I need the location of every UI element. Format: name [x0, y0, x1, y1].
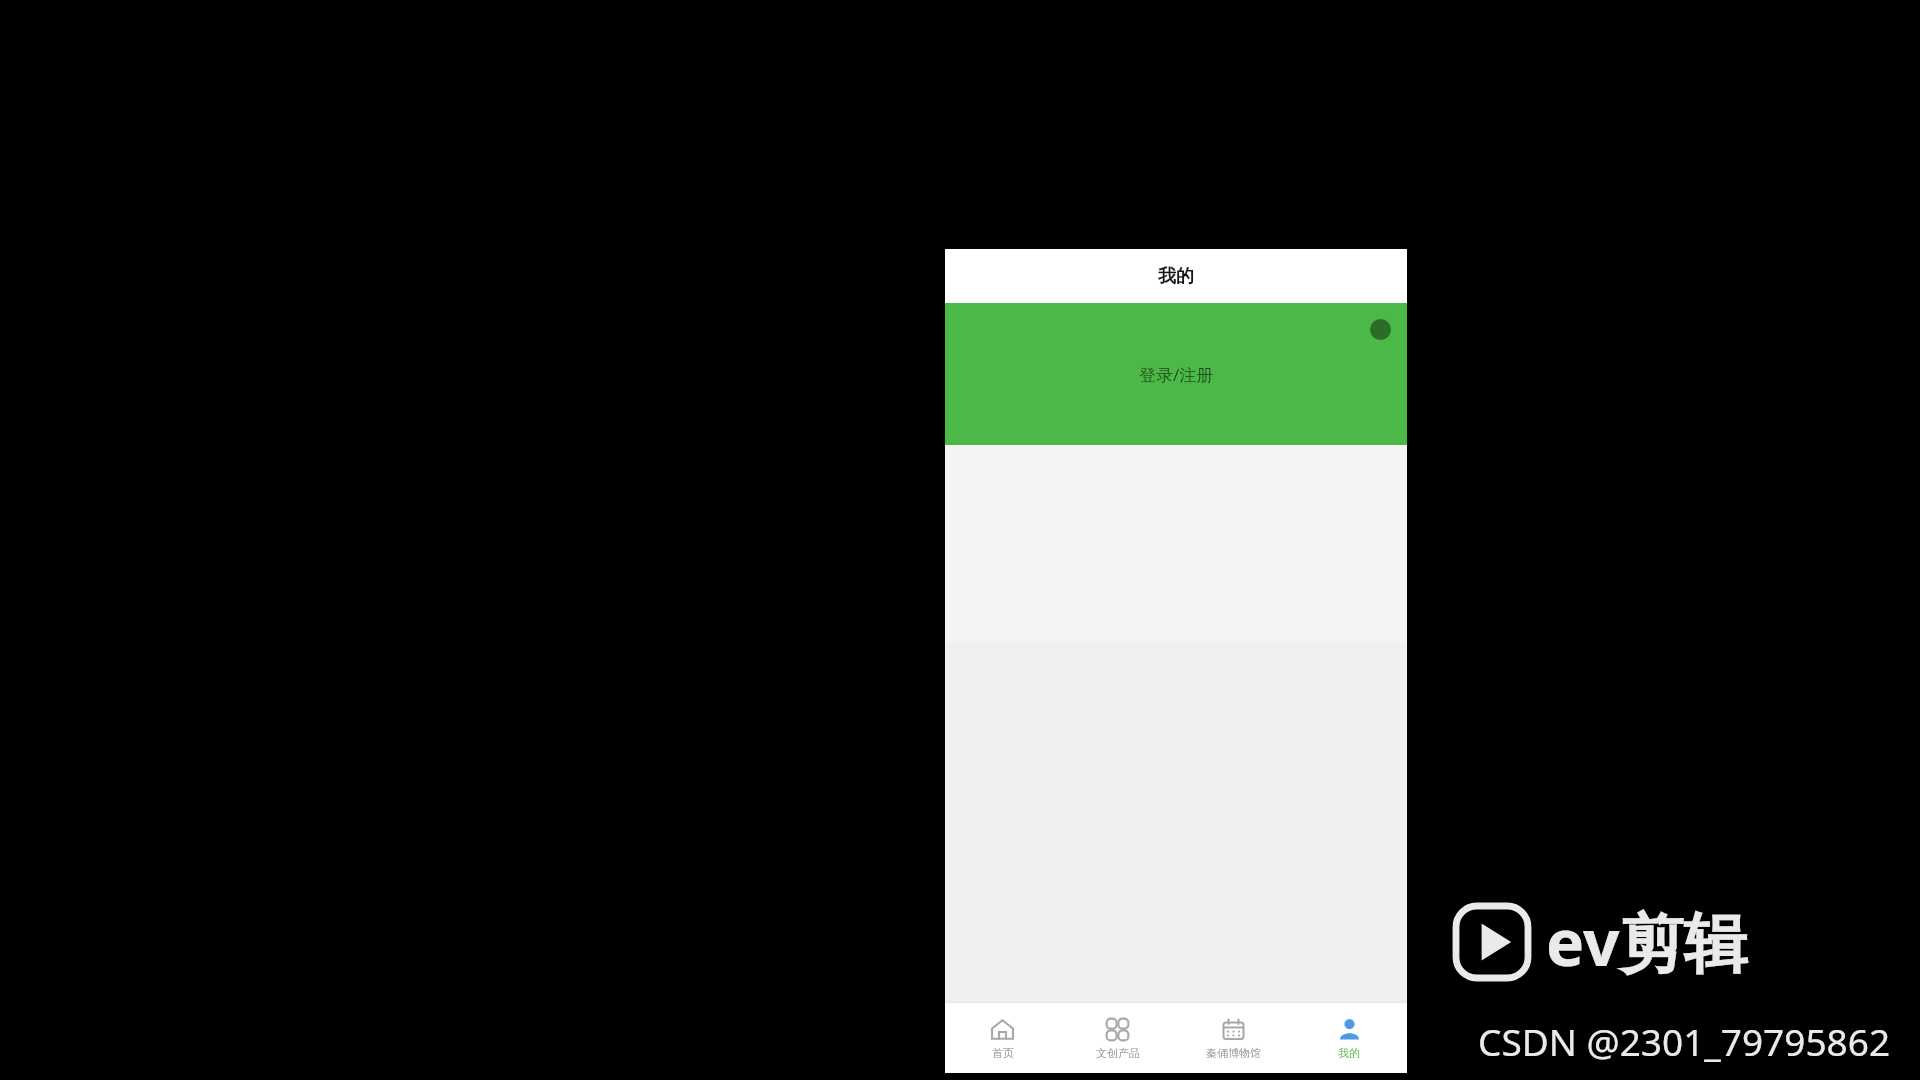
staticText: 登录/注册	[1139, 363, 1214, 386]
staticText: 首页	[992, 1046, 1014, 1060]
button[interactable]: Avatar	[1370, 319, 1391, 340]
button[interactable]: 首页	[945, 1003, 1060, 1073]
staticText: 秦俑博物馆	[1206, 1046, 1261, 1060]
staticText: 我的	[1338, 1046, 1360, 1060]
button[interactable]: 文创产品	[1060, 1003, 1175, 1073]
staticText: ev剪辑	[1546, 898, 1748, 985]
button[interactable]: Avatar	[945, 303, 1407, 445]
staticText: 我的	[1158, 265, 1194, 288]
button[interactable]: 秦俑博物馆	[1175, 1003, 1291, 1073]
button[interactable]: 我的	[1291, 1003, 1407, 1073]
staticText: 文创产品	[1096, 1046, 1140, 1060]
staticText: CSDN @2301_79795862	[1478, 1016, 1891, 1066]
